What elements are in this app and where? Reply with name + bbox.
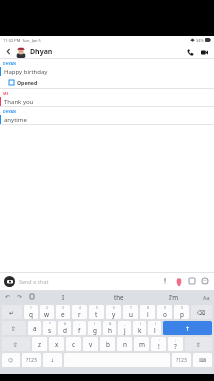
staticText: Happy birthday bbox=[4, 68, 48, 76]
staticText: ↶ bbox=[5, 293, 11, 300]
staticText: q bbox=[29, 310, 33, 319]
button[interactable]: DHYAN bbox=[0, 59, 214, 89]
staticText: d bbox=[63, 326, 67, 335]
button[interactable]: I'm bbox=[146, 293, 201, 301]
staticText: ? bbox=[174, 342, 177, 351]
button[interactable]: Send a chat bbox=[19, 278, 160, 285]
button[interactable]: Key bbox=[163, 321, 212, 335]
staticText: 4 bbox=[79, 306, 81, 310]
button[interactable]: ME bbox=[0, 89, 214, 107]
button[interactable]: Symbols bbox=[172, 353, 191, 367]
staticText: Thank you bbox=[4, 98, 34, 106]
button[interactable]: 8 bbox=[140, 305, 155, 319]
staticText: ↵ bbox=[9, 309, 15, 316]
button[interactable]: Undo bbox=[3, 292, 12, 301]
button[interactable]: Key bbox=[185, 337, 212, 351]
staticText: _ bbox=[124, 322, 126, 326]
staticText: 8 bbox=[147, 306, 149, 310]
staticText: k bbox=[138, 326, 142, 335]
staticText: h bbox=[108, 326, 112, 335]
staticText: m bbox=[139, 340, 145, 349]
staticText: DHYAN bbox=[3, 109, 16, 114]
button[interactable]: 7 bbox=[123, 305, 138, 319]
staticText: p bbox=[180, 310, 184, 319]
button[interactable]: Gallery bbox=[187, 276, 197, 286]
staticText: ⇧ bbox=[13, 341, 19, 348]
staticText: 11:02 PM Sun, Jan 5 bbox=[3, 38, 41, 43]
button[interactable]: / bbox=[88, 321, 101, 335]
button[interactable]: m bbox=[134, 337, 149, 351]
button[interactable]: Key bbox=[2, 337, 30, 351]
button[interactable]: _ bbox=[118, 321, 131, 335]
staticText: 1 bbox=[30, 306, 32, 310]
button[interactable]: ; bbox=[168, 337, 183, 351]
staticText: e bbox=[61, 310, 65, 319]
button[interactable]: Emoji bbox=[200, 276, 210, 286]
staticText: & bbox=[109, 322, 112, 326]
button[interactable]: Call bbox=[184, 46, 196, 58]
button[interactable]: 3 bbox=[56, 305, 70, 319]
button[interactable]: Hide keyboard bbox=[193, 353, 212, 367]
staticText: 2 bbox=[46, 306, 48, 310]
button[interactable]: Back bbox=[4, 47, 13, 56]
button[interactable]: c bbox=[66, 337, 81, 351]
button[interactable]: Emoji bbox=[2, 353, 20, 367]
staticText: ! bbox=[158, 342, 160, 351]
button[interactable]: 4 bbox=[72, 305, 87, 319]
button[interactable]: Symbols bbox=[22, 353, 41, 367]
button[interactable]: # bbox=[58, 321, 71, 335]
button[interactable]: Voice note bbox=[173, 276, 184, 287]
staticText: ↓ bbox=[50, 357, 55, 363]
staticText: y bbox=[112, 310, 116, 319]
button[interactable]: Sticker bbox=[160, 276, 170, 286]
button[interactable]: Clipboard bbox=[27, 292, 36, 301]
staticText: b bbox=[106, 340, 110, 349]
button[interactable]: 1 bbox=[24, 305, 38, 319]
staticText: Aa bbox=[203, 294, 210, 301]
button[interactable]: the bbox=[91, 293, 146, 301]
button[interactable]: * bbox=[43, 321, 56, 335]
staticText: ↷ bbox=[17, 293, 23, 300]
staticText: i bbox=[147, 310, 149, 319]
button[interactable]: v bbox=[83, 337, 98, 351]
staticText: ( bbox=[140, 322, 141, 326]
button[interactable]: 5 bbox=[89, 305, 104, 319]
button[interactable]: ) bbox=[148, 321, 161, 335]
button[interactable]: a bbox=[28, 321, 41, 335]
button[interactable]: Camera bbox=[4, 276, 15, 287]
button[interactable]: DHYAN bbox=[0, 107, 214, 125]
staticText: t bbox=[95, 310, 98, 319]
staticText: ⌨ bbox=[199, 357, 207, 363]
button[interactable]: b bbox=[100, 337, 115, 351]
staticText: Opened bbox=[17, 79, 38, 86]
staticText: f bbox=[78, 326, 81, 335]
button[interactable]: Back bbox=[0, 44, 214, 59]
button[interactable]: x bbox=[49, 337, 64, 351]
button[interactable]: - bbox=[73, 321, 86, 335]
staticText: ; bbox=[175, 338, 176, 342]
button[interactable]: & bbox=[103, 321, 116, 335]
button[interactable]: Voice input bbox=[43, 353, 62, 367]
staticText: * bbox=[49, 322, 51, 326]
button[interactable]: I bbox=[36, 293, 91, 301]
button[interactable]: 9 bbox=[157, 305, 172, 319]
button[interactable]: 6 bbox=[106, 305, 121, 319]
button[interactable]: Redo bbox=[15, 292, 24, 301]
staticText: u bbox=[129, 310, 133, 319]
staticText: v bbox=[89, 340, 93, 349]
button[interactable]: z bbox=[32, 337, 47, 351]
staticText: s bbox=[48, 326, 52, 335]
button[interactable]: Key bbox=[2, 321, 26, 335]
button[interactable]: ( bbox=[133, 321, 146, 335]
staticText: 0 bbox=[181, 306, 183, 310]
button[interactable]: Key bbox=[2, 305, 22, 319]
button[interactable]: 2 bbox=[40, 305, 54, 319]
button[interactable]: Video call bbox=[198, 46, 210, 58]
button[interactable]: 0 bbox=[174, 305, 189, 319]
button[interactable]: Settings bbox=[201, 292, 211, 302]
button[interactable]: Key bbox=[191, 305, 212, 319]
staticText: x bbox=[55, 340, 59, 349]
button[interactable]: : bbox=[151, 337, 166, 351]
button[interactable]: n bbox=[117, 337, 132, 351]
